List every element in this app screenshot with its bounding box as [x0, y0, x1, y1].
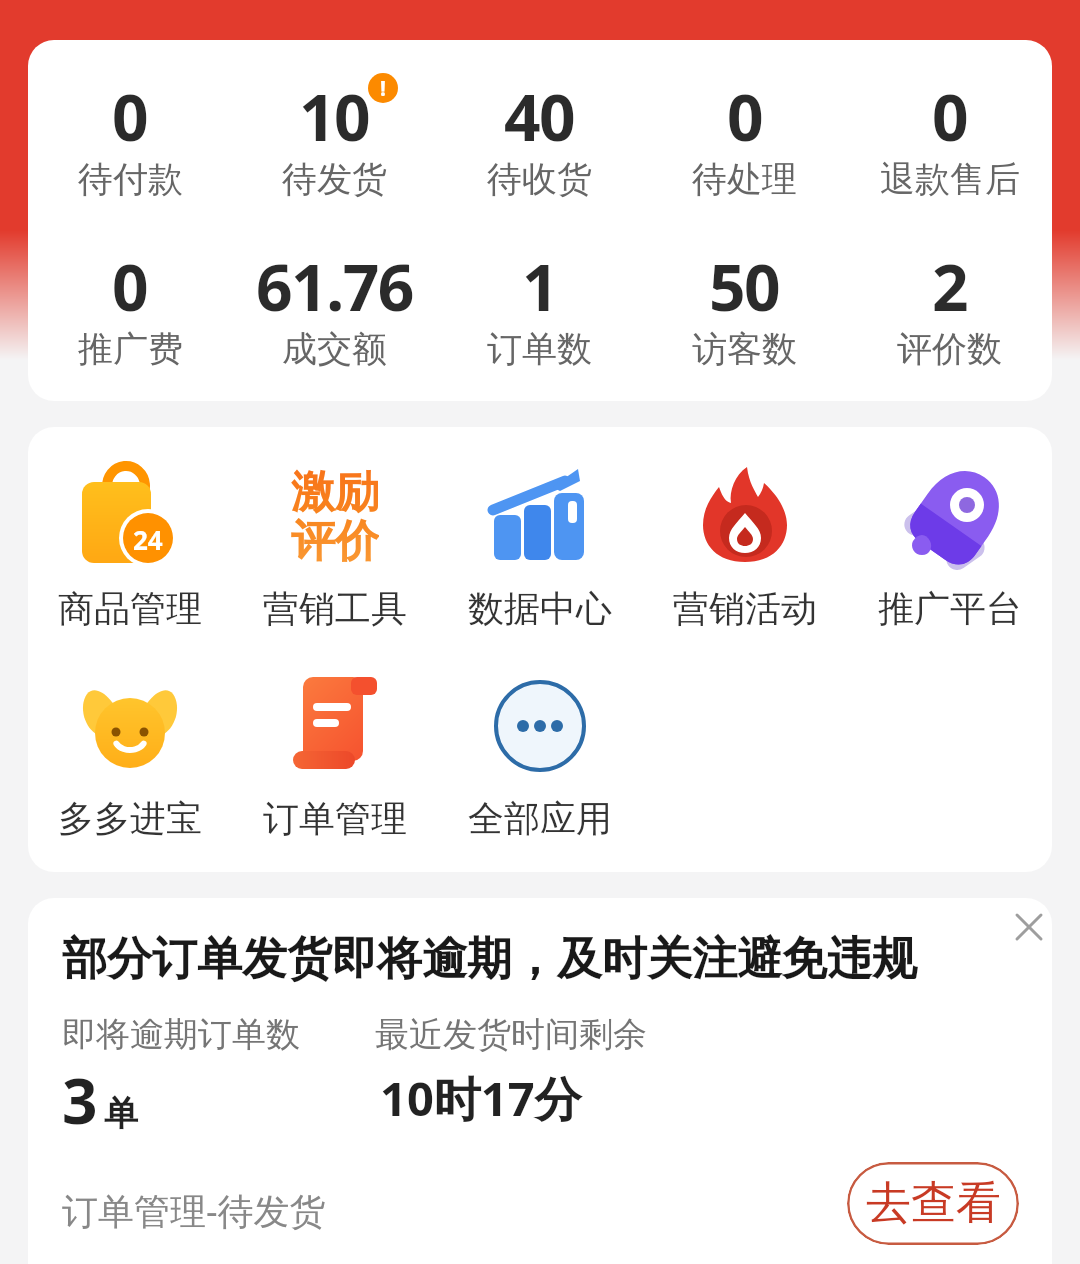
staticText: 订单管理 [263, 796, 407, 841]
staticText: 商品管理 [58, 586, 202, 631]
staticText: 10 [299, 73, 370, 143]
staticText: 0 [932, 73, 968, 143]
button[interactable]: 多多进宝 [28, 675, 232, 841]
staticText: 0 [727, 73, 763, 143]
staticText: 24 [133, 522, 163, 557]
staticText: 1 [522, 243, 558, 313]
staticText: 单 [104, 1092, 138, 1135]
staticText: 订单管理-待发货 [62, 1186, 326, 1235]
staticText: 营销活动 [673, 586, 817, 631]
staticText: 待付款 [78, 157, 183, 201]
staticText: 评价数 [897, 327, 1002, 371]
staticText: ! [380, 74, 386, 103]
button[interactable]: 激励 [232, 465, 437, 631]
button[interactable]: 数据中心 [437, 465, 642, 631]
staticText: 多多进宝 [58, 796, 202, 841]
button[interactable]: 50 [642, 243, 847, 371]
staticText: 推广平台 [878, 586, 1022, 631]
button[interactable]: 10 [232, 73, 437, 201]
staticText: 评价 [291, 514, 379, 565]
staticText: 待发货 [282, 157, 387, 201]
button[interactable]: 61.76 [232, 243, 437, 371]
button[interactable]: 营销活动 [642, 465, 847, 631]
staticText: 50 [709, 243, 780, 313]
staticText: 即将逾期订单数 [62, 1013, 300, 1056]
staticText: 10时17分 [380, 1066, 582, 1130]
button[interactable]: 去查看 [847, 1162, 1019, 1245]
button[interactable]: 推广平台 [847, 465, 1052, 631]
button[interactable]: 0 [642, 73, 847, 201]
staticText: 0 [112, 243, 148, 313]
button[interactable]: 40 [437, 73, 642, 201]
staticText: 营销工具 [263, 586, 407, 631]
staticText: 全部应用 [468, 796, 612, 841]
button[interactable]: 全部应用 [437, 675, 642, 841]
staticText: 待处理 [692, 157, 797, 201]
staticText: 最近发货时间剩余 [375, 1013, 647, 1056]
button[interactable]: 0 [28, 73, 232, 201]
staticText: 61.76 [256, 243, 413, 313]
staticText: 去查看 [866, 1175, 1001, 1232]
staticText: 数据中心 [468, 586, 612, 631]
staticText: 退款售后 [880, 157, 1020, 201]
staticText: 成交额 [282, 327, 387, 371]
staticText: 3 [62, 1058, 98, 1142]
button[interactable]: 0 [847, 73, 1052, 201]
staticText: 待收货 [487, 157, 592, 201]
staticText: 部分订单发货即将逾期，及时关注避免违规 [62, 931, 917, 988]
button[interactable]: 1 [437, 243, 642, 371]
staticText: 订单数 [487, 327, 592, 371]
button[interactable]: 24 [28, 465, 232, 631]
staticText: 推广费 [78, 327, 183, 371]
button[interactable]: 0 [28, 243, 232, 371]
button[interactable]: 2 [847, 243, 1052, 371]
staticText: 40 [504, 73, 575, 143]
staticText: 2 [932, 243, 968, 313]
button[interactable] [1011, 909, 1047, 945]
staticText: 0 [112, 73, 148, 143]
button[interactable]: 订单管理 [232, 675, 437, 841]
staticText: 访客数 [692, 327, 797, 371]
staticText: 激励 [291, 465, 379, 520]
